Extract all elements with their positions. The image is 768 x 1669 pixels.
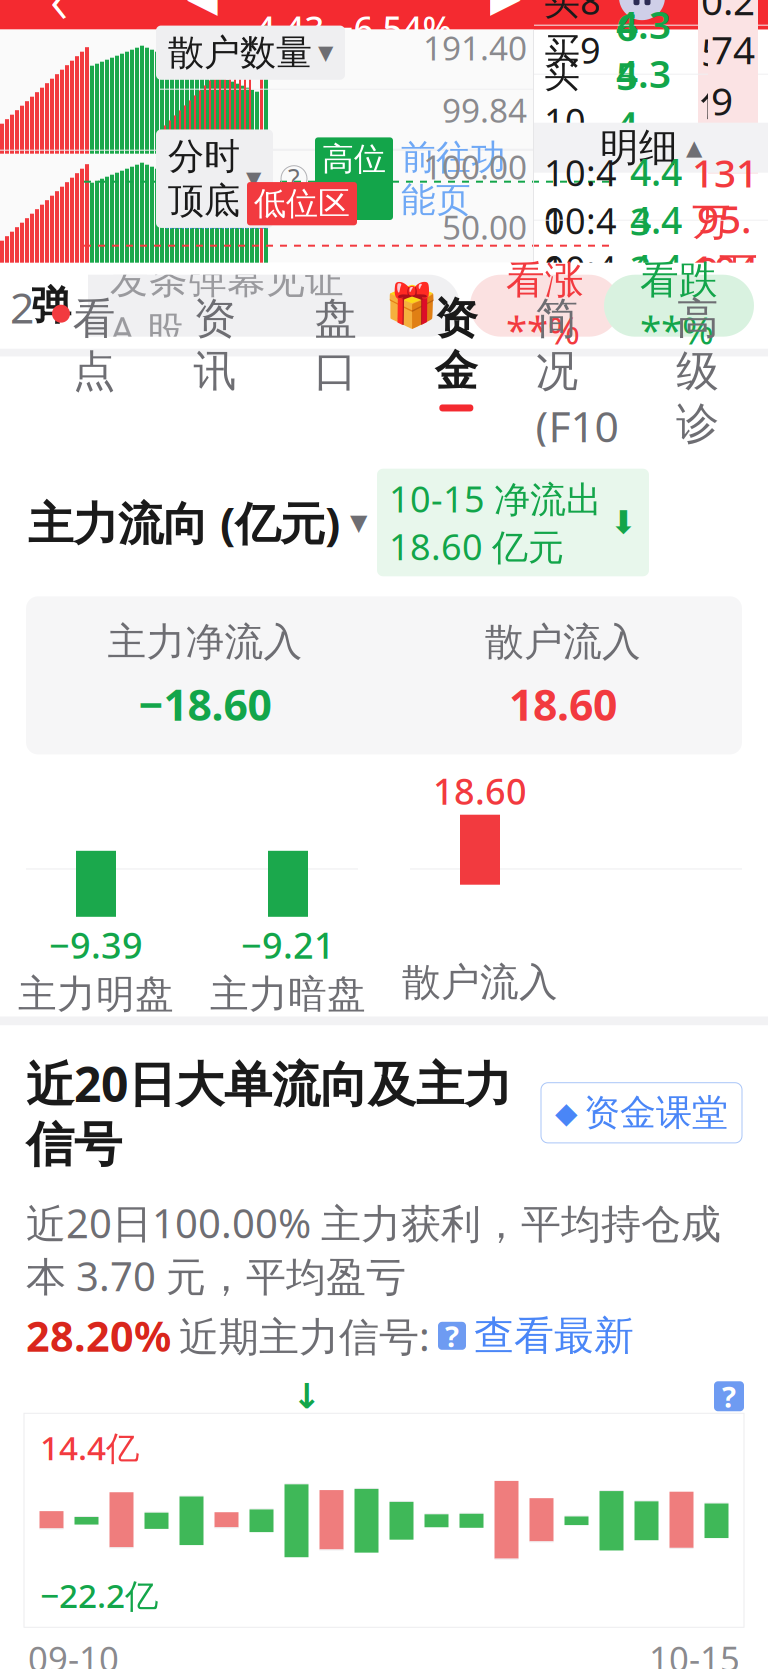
staticText: ‹ bbox=[50, 0, 68, 43]
staticText: −22.2亿 bbox=[40, 1573, 158, 1617]
staticText: 盘口 bbox=[314, 293, 357, 397]
button[interactable]: AI assistant bbox=[606, 0, 678, 30]
staticText: ? bbox=[288, 161, 300, 196]
staticText: ◀ bbox=[187, 0, 218, 20]
staticText: 主力流向 (亿元) bbox=[28, 492, 340, 553]
button[interactable]: 查看最新 bbox=[474, 1311, 634, 1360]
staticText: 买9 bbox=[544, 26, 601, 74]
staticText: 191.40 bbox=[423, 25, 527, 70]
staticText: 50.00 bbox=[442, 205, 527, 249]
staticText: 近期主力信号: bbox=[179, 1309, 430, 1362]
staticText: 28.20% bbox=[26, 1308, 171, 1363]
staticText: 4.36 bbox=[616, 0, 671, 52]
button[interactable]: 高级诊股 bbox=[637, 279, 758, 516]
button[interactable]: 看涨**% bbox=[470, 275, 620, 337]
staticText: 4.34 bbox=[616, 47, 671, 150]
staticText: 104万 bbox=[692, 243, 758, 342]
button[interactable]: 资讯 bbox=[155, 279, 275, 411]
staticText: ▲ bbox=[686, 136, 702, 160]
staticText: 4.43 bbox=[630, 147, 682, 246]
staticText: ? bbox=[722, 1377, 736, 1416]
staticText: 资讯 bbox=[193, 293, 236, 397]
staticText: 看跌**% bbox=[640, 256, 718, 355]
staticText: 看点 bbox=[73, 293, 116, 397]
staticText: 买10 bbox=[544, 53, 586, 145]
button[interactable]: 明细 bbox=[534, 123, 768, 173]
staticText: 发条弹幕见证 A 股 bbox=[110, 256, 344, 355]
button[interactable]: Next stock bbox=[474, 0, 536, 30]
staticText: ▼ bbox=[350, 510, 367, 535]
staticText: 4.43 bbox=[630, 243, 682, 342]
button[interactable]: Search bbox=[678, 0, 752, 30]
button[interactable]: 10-15 净流出 18.60 亿元 bbox=[377, 469, 649, 576]
staticText: 主力明盘 bbox=[18, 971, 174, 1018]
staticText: ▶ bbox=[490, 0, 521, 20]
staticText: 95.9万 bbox=[697, 193, 758, 295]
button[interactable]: 弹 bbox=[14, 275, 460, 337]
staticText: 主力净流入 bbox=[107, 618, 302, 666]
button[interactable]: Chart help bbox=[714, 1381, 744, 1411]
staticText: −9.39 bbox=[49, 921, 143, 969]
staticText: 0.25亿 bbox=[701, 0, 755, 125]
staticText: 09-10 bbox=[28, 1635, 119, 1669]
staticText: 4.43 bbox=[630, 195, 682, 294]
staticText: 简况(F10) bbox=[535, 293, 618, 511]
staticText: 高位区 bbox=[322, 139, 386, 218]
staticText: 100.00 bbox=[423, 144, 527, 189]
button[interactable]: 资金 bbox=[396, 279, 517, 411]
button[interactable]: 看点 bbox=[34, 279, 155, 411]
staticText: 低位区 bbox=[254, 184, 350, 223]
button[interactable]: Help bbox=[438, 1322, 466, 1350]
staticText: 资金 bbox=[435, 293, 478, 397]
staticText: 749万 bbox=[711, 24, 755, 174]
staticText: ▼ bbox=[246, 167, 261, 190]
staticText: 2 bbox=[10, 279, 34, 335]
staticText: 近20日100.00% 主力获利，平均持仓成本 3.70 元，平均盈亏 bbox=[26, 1196, 721, 1302]
staticText: 10:40 bbox=[544, 148, 617, 244]
staticText: 查看最新 bbox=[474, 1311, 634, 1360]
staticText: 前往功能页 bbox=[401, 136, 506, 221]
staticText: 131万 bbox=[692, 147, 758, 246]
button[interactable]: Previous stock bbox=[171, 0, 233, 30]
staticText: 10:40 bbox=[544, 244, 617, 340]
staticText: 明细 bbox=[600, 124, 678, 171]
staticText: 看涨**% bbox=[506, 256, 584, 355]
button[interactable]: Back bbox=[16, 0, 102, 30]
staticText: 散户流入 bbox=[485, 618, 641, 666]
staticText: 弹 bbox=[31, 281, 71, 330]
staticText: 4.35 bbox=[616, 0, 671, 101]
staticText: 10-15 bbox=[649, 1635, 740, 1669]
button[interactable]: ◆ bbox=[541, 1083, 742, 1143]
staticText: ◆ bbox=[555, 1096, 578, 1129]
staticText: 922万 bbox=[711, 0, 755, 76]
staticText: 散户流入 bbox=[402, 958, 558, 1006]
staticText: ⬇ bbox=[610, 504, 637, 541]
button[interactable]: 主力流向 (亿元) bbox=[28, 492, 367, 553]
staticText: 分时顶底 bbox=[168, 134, 240, 223]
staticText: 🎁 bbox=[385, 281, 438, 330]
staticText: 18.60 bbox=[433, 767, 527, 815]
staticText: 99.84 bbox=[442, 88, 527, 132]
staticText: 18.60 bbox=[509, 676, 617, 732]
staticText: 散户数量 bbox=[168, 31, 312, 75]
button[interactable]: 看跌**% bbox=[604, 275, 754, 337]
staticText: −9.21 bbox=[241, 921, 335, 969]
staticText: ↓ bbox=[292, 1377, 321, 1416]
staticText: 买8 bbox=[544, 0, 601, 25]
staticText: −18.60 bbox=[138, 676, 271, 732]
staticText: 资金课堂 bbox=[584, 1091, 728, 1135]
staticText: ? bbox=[445, 1316, 459, 1355]
button[interactable]: 盘口 bbox=[275, 279, 396, 411]
staticText: 主力暗盘 bbox=[210, 971, 366, 1018]
staticText: 14.4亿 bbox=[40, 1425, 139, 1470]
staticText: 10-15 净流出 18.60 亿元 bbox=[389, 475, 602, 570]
button[interactable]: 简况(F10) bbox=[517, 279, 637, 525]
staticText: ⚲ bbox=[693, 0, 736, 30]
staticText: 10:40 bbox=[544, 196, 617, 292]
staticText: ▼ bbox=[318, 41, 333, 64]
staticText: 近20日大单流向及主力信号 bbox=[26, 1051, 512, 1174]
staticText: 高级诊股 bbox=[676, 293, 719, 502]
staticText: 4.43 −6.54% bbox=[255, 5, 452, 51]
